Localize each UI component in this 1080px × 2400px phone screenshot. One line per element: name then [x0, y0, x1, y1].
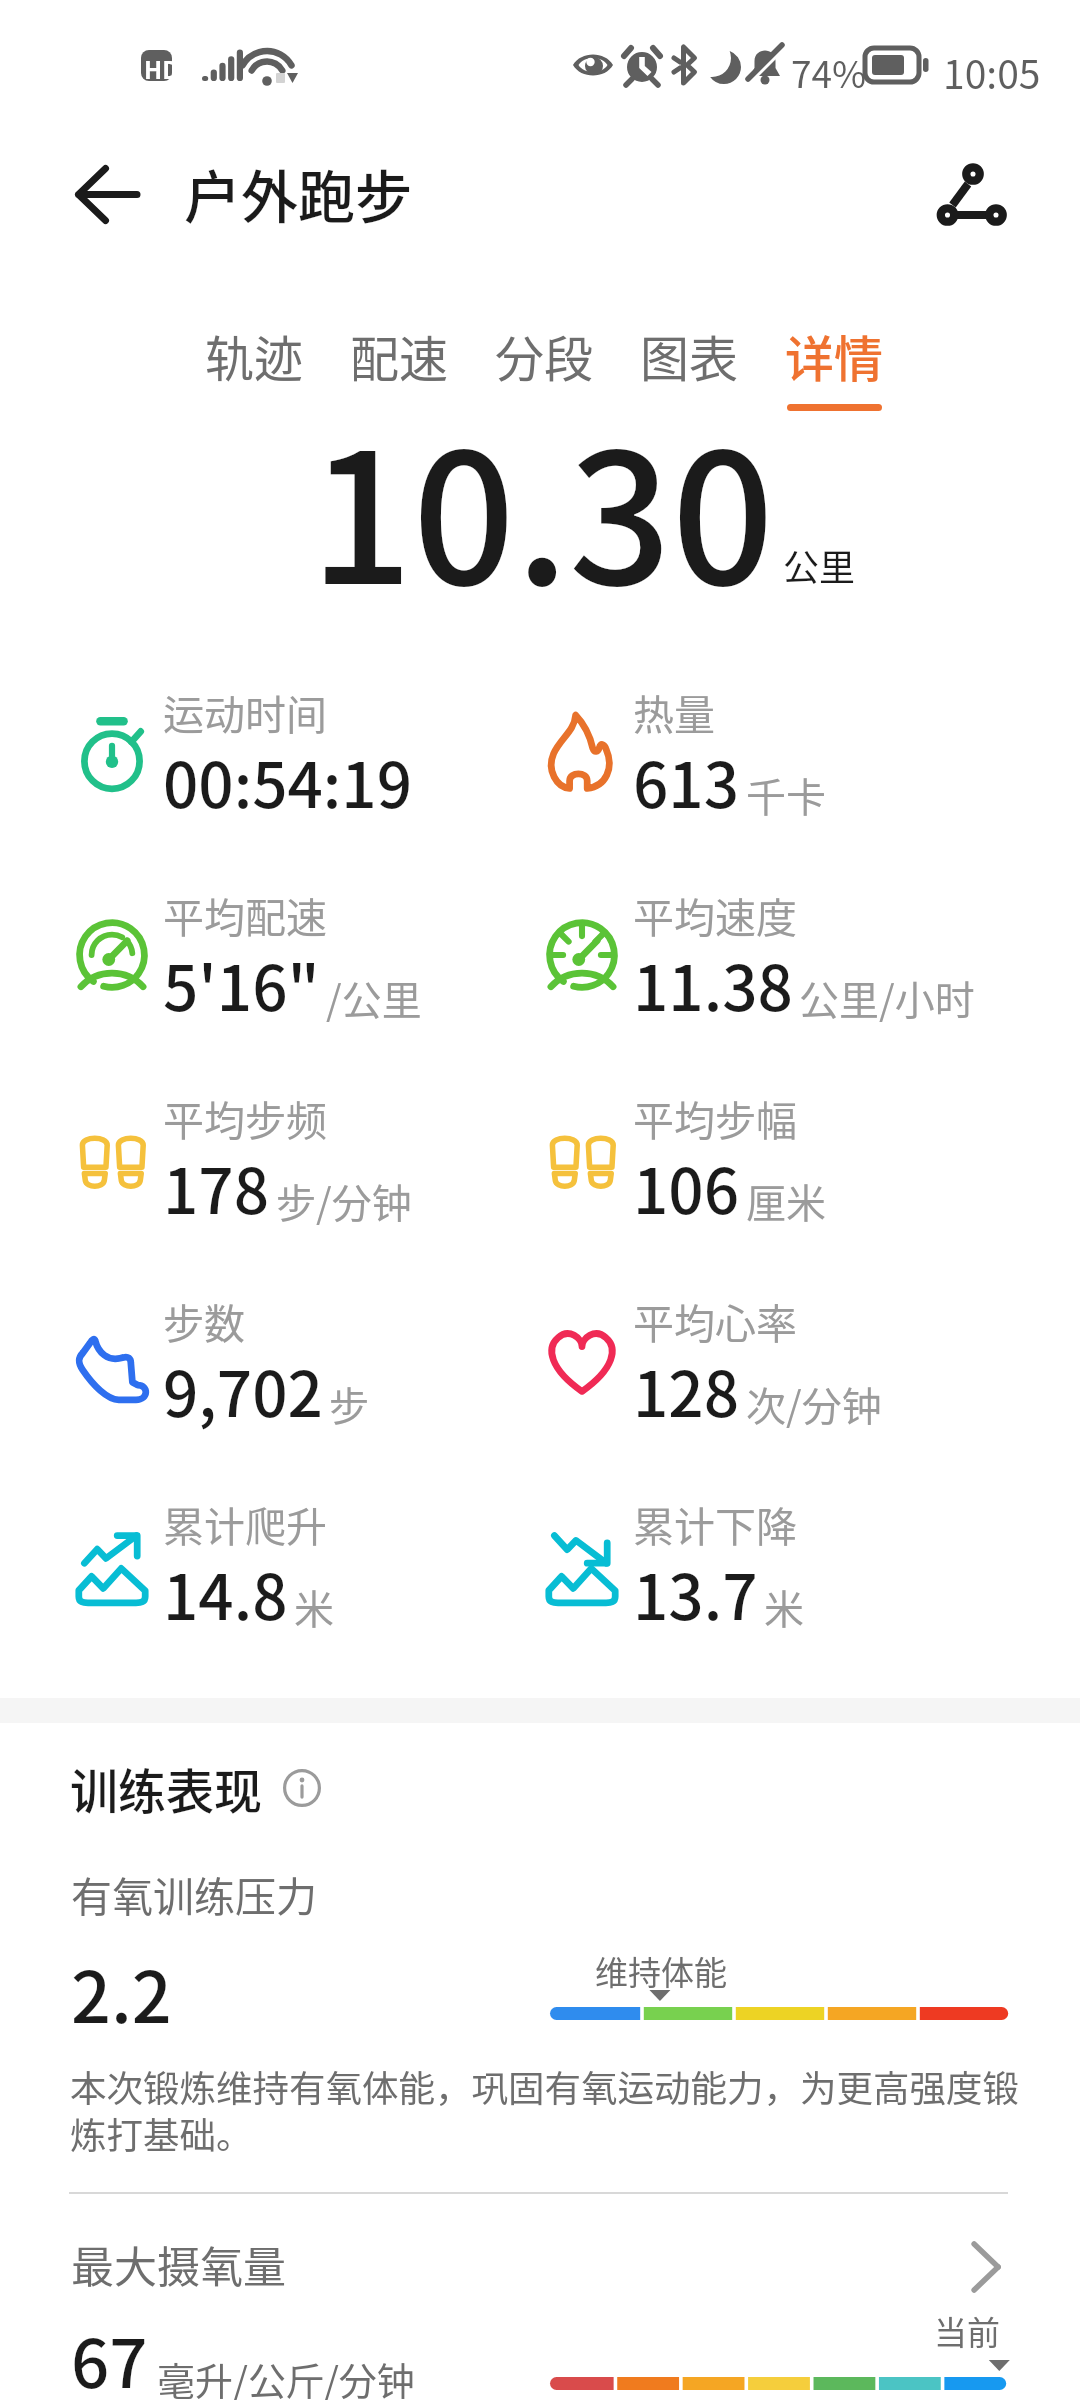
staticText: 米 [764, 1578, 804, 1636]
staticText: 训练表现 [70, 1753, 263, 1823]
staticText: 米 [294, 1578, 334, 1636]
staticText: 14.8 [163, 1548, 288, 1638]
button[interactable]: 轨迹 [205, 320, 304, 404]
staticText: 公里/小时 [799, 969, 975, 1027]
button[interactable]: Open VO2 max detail [950, 2232, 1020, 2302]
staticText: 次/分钟 [746, 1375, 882, 1433]
staticText: 2.2 [71, 1942, 172, 2043]
button[interactable]: 训练表现 [70, 1753, 321, 1823]
staticText: 平均速度 [633, 885, 797, 944]
staticText: 00:54:19 [163, 736, 412, 826]
staticText: 11.38 [633, 939, 793, 1029]
staticText: 步 [329, 1375, 369, 1433]
staticText: 平均步幅 [633, 1088, 797, 1147]
staticText: 平均心率 [633, 1291, 797, 1350]
staticText: 运动时间 [163, 682, 327, 741]
staticText: 106 [633, 1142, 740, 1232]
staticText: 累计爬升 [163, 1494, 327, 1553]
staticText: 公里 [783, 539, 856, 591]
staticText: 最大摄氧量 [71, 2233, 286, 2295]
staticText: 平均步频 [163, 1088, 327, 1147]
staticText: 本次锻炼维持有氧体能，巩固有氧运动能力，为更高强度锻 [70, 2060, 1019, 2113]
staticText: 13.7 [633, 1548, 758, 1638]
staticText: /公里 [326, 969, 422, 1027]
staticText: 详情 [785, 320, 884, 391]
staticText: 613 [633, 736, 740, 826]
staticText: 178 [163, 1142, 270, 1232]
button[interactable]: 分段 [495, 320, 594, 404]
staticText: 厘米 [746, 1172, 826, 1230]
staticText: 67 [71, 2310, 148, 2400]
staticText: 步/分钟 [276, 1172, 412, 1230]
button[interactable]: 详情 [785, 320, 884, 411]
staticText: 分段 [495, 320, 594, 391]
staticText: 平均配速 [163, 885, 327, 944]
staticText: HD [144, 51, 180, 86]
staticText: 当前 [934, 2307, 1000, 2355]
staticText: 5'16" [163, 939, 320, 1029]
button[interactable]: Share [925, 148, 1021, 238]
button[interactable]: 图表 [640, 320, 739, 404]
staticText: 热量 [633, 682, 715, 741]
staticText: 轨迹 [205, 320, 304, 391]
staticText: 炼打基础。 [70, 2107, 253, 2160]
staticText: 10.30 [310, 375, 775, 636]
staticText: 步数 [163, 1291, 245, 1350]
staticText: 有氧训练压力 [71, 1864, 317, 1923]
staticText: 毫升/公斤/分钟 [157, 2351, 415, 2400]
staticText: 128 [633, 1345, 740, 1435]
staticText: 74% [791, 45, 867, 99]
button[interactable]: 配速 [350, 320, 449, 404]
staticText: 累计下降 [633, 1494, 797, 1553]
staticText: 千卡 [746, 766, 826, 824]
staticText: 户外跑步 [184, 152, 412, 235]
staticText: 维持体能 [595, 1947, 727, 1995]
staticText: 9,702 [163, 1345, 323, 1435]
staticText: 10:05 [943, 44, 1041, 100]
staticText: 图表 [640, 320, 739, 391]
button[interactable]: Back [60, 148, 156, 238]
staticText: 配速 [350, 320, 449, 391]
